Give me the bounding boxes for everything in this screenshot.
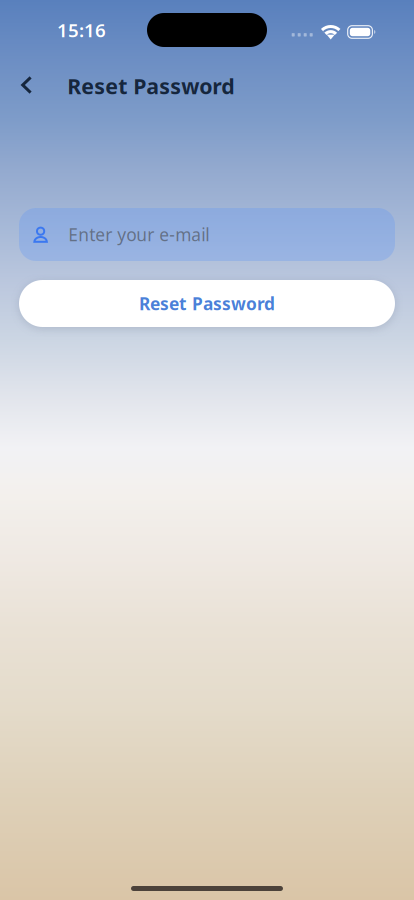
staticText: Reset Password <box>67 72 234 100</box>
staticText: 15:16 <box>57 18 106 42</box>
staticText: Reset Password <box>139 292 275 315</box>
button[interactable]: Back <box>0 64 48 108</box>
staticText: Enter your e-mail <box>68 223 209 246</box>
button[interactable]: Reset Password <box>19 280 395 327</box>
